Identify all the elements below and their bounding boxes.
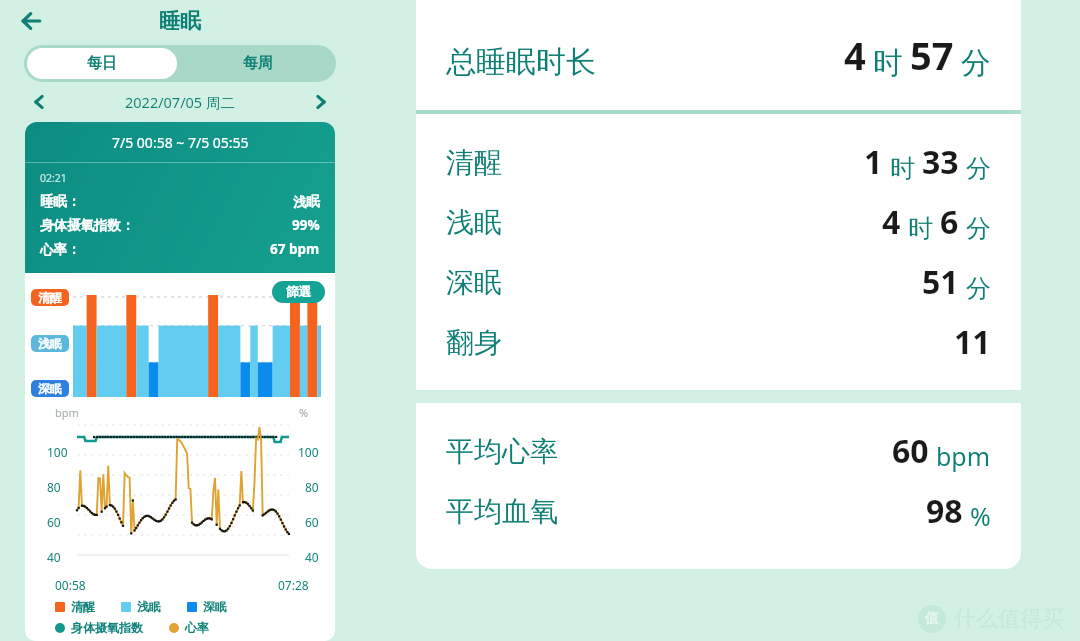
staticText: 40 — [305, 549, 319, 565]
staticText: 7/5 00:58 ~ 7/5 05:55 — [112, 133, 249, 152]
staticText: 分 — [961, 44, 991, 81]
staticText: 睡眠 — [159, 8, 201, 34]
staticText: 每周 — [243, 54, 273, 73]
staticText: 值 — [925, 610, 939, 628]
staticText: 51 — [922, 260, 959, 304]
staticText: 深眠 — [38, 381, 62, 396]
staticText: 浅眠 — [38, 336, 62, 351]
staticText: 什么值得买 — [954, 605, 1064, 633]
staticText: 深眠 — [203, 599, 227, 614]
staticText: 深眠 — [446, 265, 502, 300]
staticText: 60 — [47, 514, 61, 530]
staticText: 100 — [298, 444, 319, 460]
button[interactable]: 7/5 00:58 ~ 7/5 05:55 — [25, 122, 335, 273]
staticText: 浅眠 — [137, 599, 161, 614]
staticText: 分 — [966, 273, 991, 304]
staticText: 02:21 — [40, 171, 67, 185]
staticText: 11 — [954, 320, 991, 364]
staticText: % — [299, 405, 309, 420]
staticText: 40 — [47, 549, 61, 565]
staticText: 100 — [47, 444, 68, 460]
button[interactable]: 每日 — [27, 48, 177, 79]
staticText: 2022/07/05 周二 — [125, 92, 235, 112]
staticText: 分 — [966, 153, 991, 184]
staticText: 身体摄氧指数： — [40, 217, 135, 234]
staticText: 清醒 — [38, 290, 62, 305]
button[interactable]: 每周 — [180, 45, 336, 82]
button[interactable]: 深眠 — [416, 252, 1021, 312]
staticText: 1 — [864, 140, 883, 184]
button[interactable]: 平均血氧 — [416, 481, 1021, 541]
button[interactable]: Next day — [304, 85, 338, 119]
staticText: 浅眠 — [446, 205, 502, 240]
staticText: 33 — [922, 140, 959, 184]
staticText: 睡眠： — [40, 193, 81, 210]
button[interactable]: 翻身 — [416, 312, 1021, 372]
staticText: % — [970, 499, 991, 533]
staticText: 篩選 — [286, 284, 311, 300]
staticText: bpm — [55, 405, 79, 420]
staticText: 80 — [47, 479, 61, 495]
staticText: 浅眠 — [293, 193, 320, 210]
staticText: 平均心率 — [446, 434, 558, 469]
staticText: 时 — [890, 153, 915, 184]
staticText: 6 — [940, 200, 959, 244]
staticText: 99% — [292, 216, 320, 234]
staticText: 清醒 — [71, 599, 95, 614]
button[interactable]: 平均心率 — [416, 421, 1021, 481]
staticText: bpm — [936, 439, 991, 473]
staticText: 60 — [892, 429, 929, 473]
staticText: 时 — [908, 213, 933, 244]
staticText: 98 — [926, 489, 963, 533]
staticText: 4 — [844, 29, 866, 81]
staticText: 00:58 — [55, 577, 86, 593]
staticText: 清醒 — [446, 145, 502, 180]
staticText: 平均血氧 — [446, 494, 558, 529]
staticText: 60 — [305, 514, 319, 530]
staticText: 时 — [873, 44, 903, 81]
staticText: 4 — [882, 200, 901, 244]
button[interactable]: 篩選 — [286, 284, 311, 300]
staticText: 翻身 — [446, 325, 502, 360]
staticText: 分 — [966, 213, 991, 244]
staticText: 每日 — [87, 54, 117, 73]
staticText: 80 — [305, 479, 319, 495]
staticText: 心率： — [40, 241, 81, 258]
button[interactable]: 清醒 — [416, 132, 1021, 192]
button[interactable]: Previous day — [22, 85, 56, 119]
button[interactable]: 总睡眠时长 — [416, 0, 1021, 110]
staticText: 67 bpm — [270, 240, 320, 258]
button[interactable]: 浅眠 — [416, 192, 1021, 252]
staticText: 身体摄氧指数 — [71, 620, 143, 635]
staticText: 57 — [910, 29, 954, 81]
staticText: 总睡眠时长 — [446, 43, 596, 81]
button[interactable]: Back — [10, 0, 54, 42]
staticText: 07:28 — [278, 577, 309, 593]
staticText: 心率 — [185, 620, 209, 635]
